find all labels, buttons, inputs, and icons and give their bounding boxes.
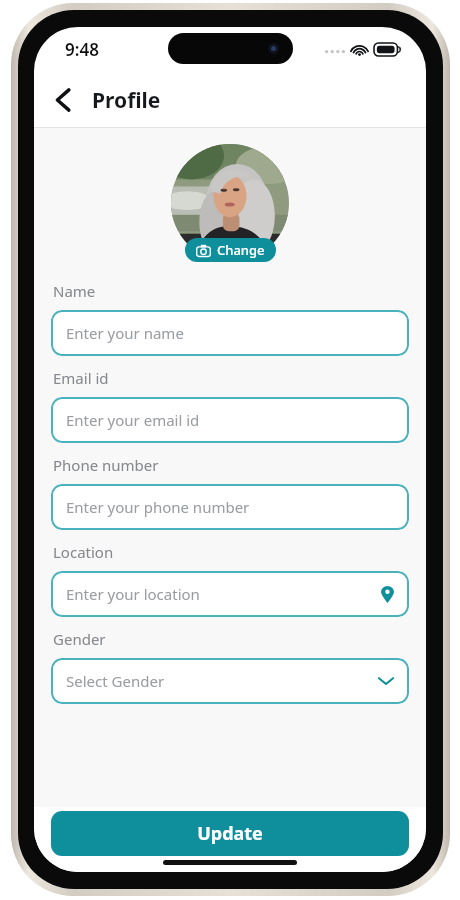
staticText: Select Gender bbox=[66, 671, 378, 691]
button[interactable]: Update bbox=[51, 811, 409, 856]
staticText: Profile bbox=[92, 86, 161, 115]
staticText: Enter your name bbox=[66, 323, 394, 343]
staticText: Enter your phone number bbox=[66, 497, 394, 517]
button[interactable]: Enter your email id bbox=[51, 397, 409, 443]
button[interactable]: Enter your name bbox=[51, 310, 409, 356]
staticText: Enter your location bbox=[66, 584, 381, 604]
button[interactable]: Enter your phone number bbox=[51, 484, 409, 530]
staticText: Location bbox=[53, 542, 114, 562]
staticText: Enter your email id bbox=[66, 410, 394, 430]
button[interactable]: Enter your location bbox=[51, 571, 409, 617]
button[interactable]: Change bbox=[185, 238, 276, 262]
staticText: Gender bbox=[53, 629, 106, 649]
staticText: Email id bbox=[53, 368, 109, 388]
staticText: Change bbox=[217, 241, 265, 259]
staticText: Phone number bbox=[53, 455, 159, 475]
staticText: Name bbox=[53, 281, 96, 301]
button[interactable]: Back bbox=[42, 79, 84, 121]
staticText: 9:48 bbox=[65, 38, 99, 61]
button[interactable]: Select Gender bbox=[51, 658, 409, 704]
staticText: Update bbox=[197, 821, 263, 846]
